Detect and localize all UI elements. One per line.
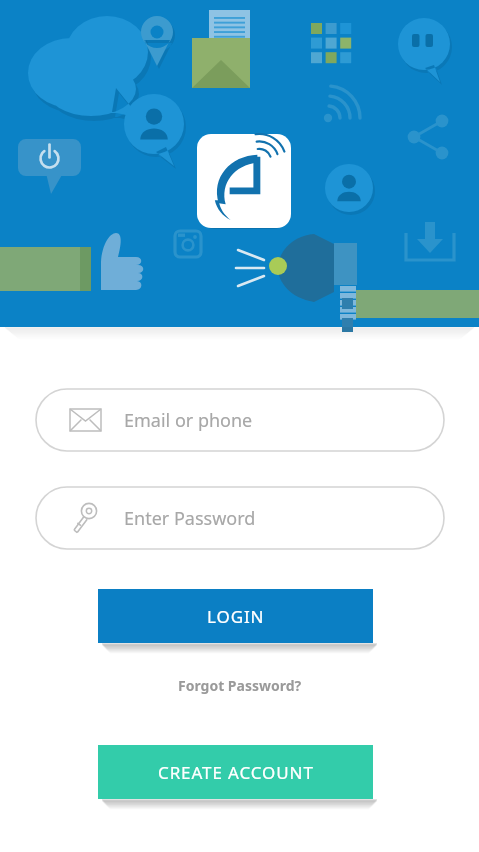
- staticText: Enter Password: [124, 506, 256, 531]
- staticText: LOGIN: [207, 605, 265, 628]
- button[interactable]: Forgot Password?: [0, 671, 479, 699]
- button[interactable]: CREATE ACCOUNT: [98, 745, 373, 799]
- staticText: CREATE ACCOUNT: [158, 761, 314, 784]
- button[interactable]: LOGIN: [98, 589, 373, 643]
- button[interactable]: Enter Password: [36, 487, 444, 549]
- button[interactable]: Email or phone: [36, 389, 444, 451]
- staticText: Forgot Password?: [178, 676, 302, 695]
- staticText: Email or phone: [124, 408, 253, 433]
